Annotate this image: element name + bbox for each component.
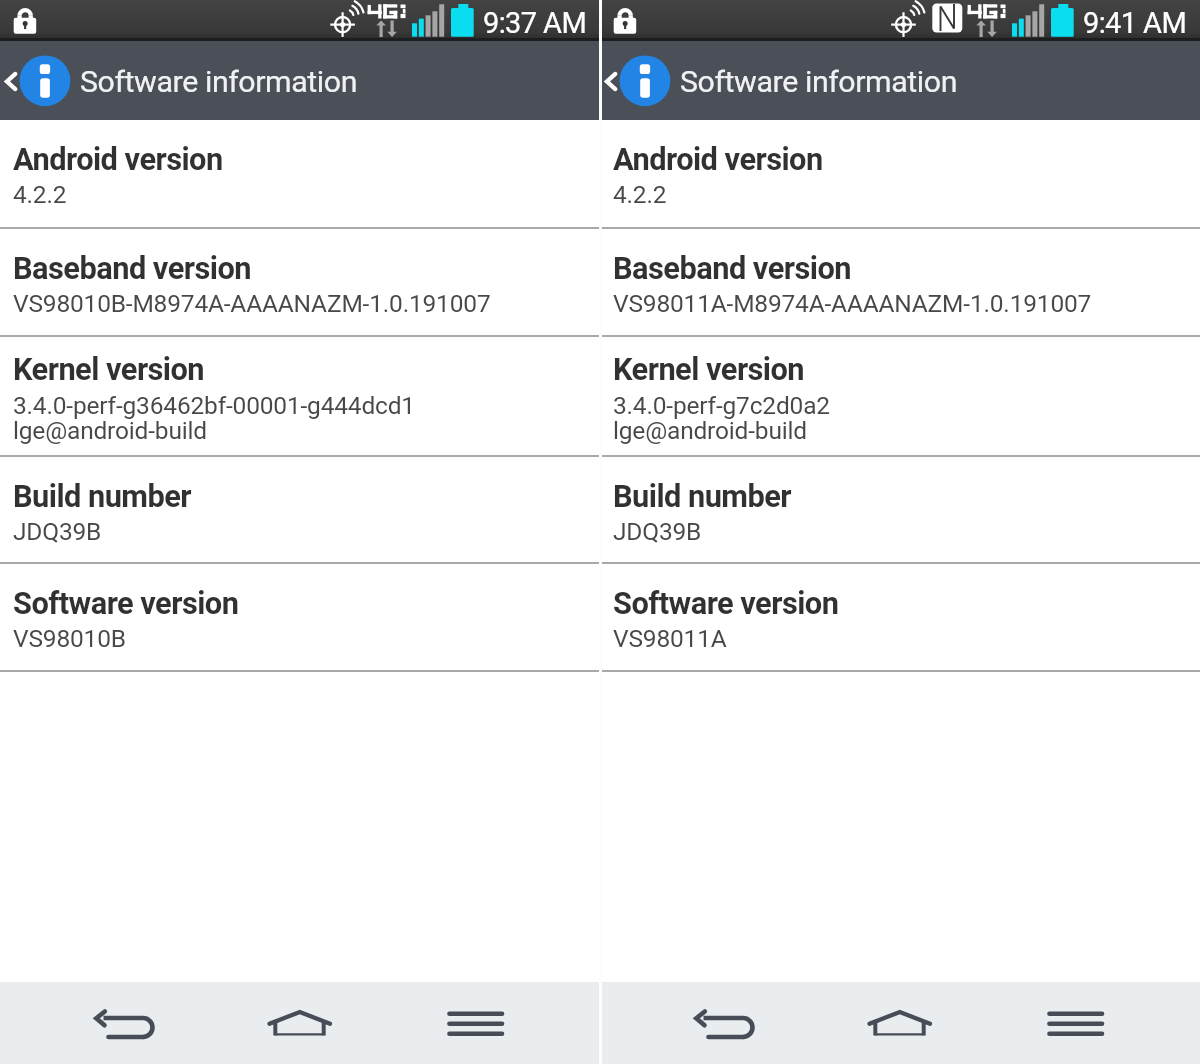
button[interactable]: Back xyxy=(84,982,164,1064)
button[interactable]: Kernel version xyxy=(600,337,1200,455)
button[interactable]: Software version xyxy=(0,564,600,670)
staticText: Baseband version xyxy=(13,250,251,286)
staticText: Baseband version xyxy=(613,250,851,286)
button[interactable]: Android version xyxy=(0,120,600,227)
button[interactable]: Menu xyxy=(436,982,516,1064)
staticText: lge@android-build xyxy=(613,416,807,445)
button[interactable]: Kernel version xyxy=(0,337,600,455)
button[interactable]: Baseband version xyxy=(0,229,600,335)
staticText: Android version xyxy=(13,141,223,177)
staticText: 4.2.2 xyxy=(13,180,67,209)
button[interactable]: Home xyxy=(260,982,340,1064)
staticText: VS98010B-M8974A-AAAANAZM-1.0.191007 xyxy=(13,289,491,318)
staticText: Software version xyxy=(13,585,239,621)
button[interactable]: Baseband version xyxy=(600,229,1200,335)
staticText: JDQ39B xyxy=(613,517,702,546)
staticText: Software information xyxy=(80,64,358,100)
staticText: Build number xyxy=(613,478,792,514)
staticText: 9:37 AM xyxy=(483,6,587,40)
button[interactable]: Navigate up xyxy=(0,41,72,120)
button[interactable]: Menu xyxy=(1036,982,1116,1064)
staticText: Software version xyxy=(613,585,839,621)
staticText: Software information xyxy=(680,64,958,100)
staticText: 3.4.0-perf-g7c2d0a2 xyxy=(613,391,830,420)
staticText: 4.2.2 xyxy=(613,180,667,209)
staticText: JDQ39B xyxy=(13,517,102,546)
staticText: VS98011A-M8974A-AAAANAZM-1.0.191007 xyxy=(613,289,1092,318)
button[interactable]: Software version xyxy=(600,564,1200,670)
staticText: Build number xyxy=(13,478,192,514)
button[interactable]: Build number xyxy=(600,457,1200,562)
button[interactable]: Home xyxy=(860,982,940,1064)
staticText: 9:41 AM xyxy=(1083,6,1187,40)
staticText: 3.4.0-perf-g36462bf-00001-g444dcd1 xyxy=(13,391,415,420)
staticText: Kernel version xyxy=(13,351,205,387)
button[interactable]: Build number xyxy=(0,457,600,562)
staticText: Kernel version xyxy=(613,351,805,387)
staticText: lge@android-build xyxy=(13,416,207,445)
staticText: VS98010B xyxy=(13,624,126,653)
button[interactable]: Back xyxy=(684,982,764,1064)
staticText: VS98011A xyxy=(613,624,727,653)
button[interactable]: Navigate up xyxy=(600,41,672,120)
staticText: Android version xyxy=(613,141,823,177)
button[interactable]: Android version xyxy=(600,120,1200,227)
